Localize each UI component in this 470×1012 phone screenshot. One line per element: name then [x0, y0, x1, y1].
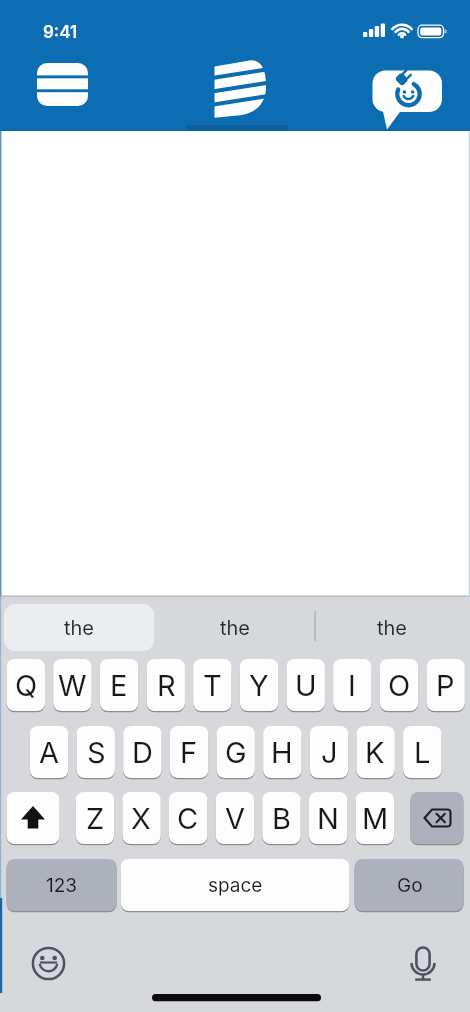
staticText: T [203, 668, 222, 703]
staticText: Y [249, 668, 269, 703]
staticText: G [225, 735, 247, 770]
staticText: E [110, 668, 128, 703]
staticText: 123 [46, 874, 78, 897]
staticText: Go [397, 874, 423, 897]
staticText: the [220, 616, 251, 640]
staticText: space [208, 874, 263, 897]
staticText: O [388, 668, 411, 703]
staticText: A [39, 735, 60, 770]
staticText: F [180, 735, 198, 770]
staticText: 9:41 [43, 22, 78, 42]
staticText: U [295, 668, 317, 703]
staticText: P [436, 668, 455, 703]
staticText: K [365, 735, 385, 770]
staticText: M [362, 801, 389, 836]
staticText: V [225, 801, 246, 836]
staticText: C [177, 801, 199, 836]
staticText: W [58, 668, 87, 703]
staticText: X [131, 801, 151, 836]
staticText: R [157, 668, 176, 703]
staticText: L [414, 735, 431, 770]
staticText: Z [86, 801, 105, 836]
staticText: J [321, 735, 338, 770]
staticText: the [64, 616, 95, 640]
staticText: N [317, 801, 339, 836]
staticText: H [271, 735, 293, 770]
staticText: I [348, 668, 356, 703]
staticText: B [272, 801, 291, 836]
staticText: D [132, 735, 153, 770]
staticText: S [87, 735, 106, 770]
staticText: the [377, 616, 408, 640]
staticText: Q [15, 668, 38, 703]
